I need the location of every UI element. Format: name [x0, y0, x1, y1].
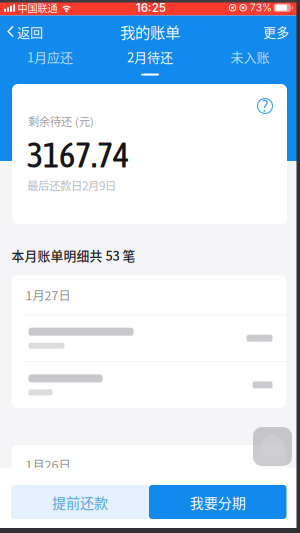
- staticText: 更多: [263, 22, 289, 41]
- staticText: 1月27日: [25, 286, 70, 304]
- staticText: 我要分期: [190, 492, 246, 512]
- staticText: 我的账单: [120, 20, 180, 43]
- staticText: 3167.74: [27, 135, 129, 175]
- staticText: 中国联通: [17, 0, 57, 15]
- button[interactable]: 1月应还: [0, 47, 100, 80]
- staticText: 返回: [17, 22, 43, 41]
- button[interactable]: 2月待还: [100, 47, 200, 80]
- staticText: 最后还款日2月9日: [27, 177, 116, 194]
- staticText: 73%: [250, 1, 272, 14]
- staticText: 2月待还: [127, 47, 173, 66]
- button[interactable]: 返回: [0, 15, 53, 47]
- button[interactable]: 我要分期: [149, 485, 286, 519]
- staticText: 1月26日: [25, 456, 70, 473]
- button[interactable]: 未入账: [200, 47, 300, 80]
- staticText: 未入账: [230, 47, 269, 66]
- button[interactable]: 帮助说明: [257, 98, 273, 114]
- button[interactable]: 提前还款: [11, 485, 149, 519]
- staticText: 1月应还: [27, 47, 73, 66]
- staticText: 本月账单明细共 53 笔: [11, 246, 135, 264]
- button[interactable]: [11, 315, 286, 361]
- button[interactable]: [11, 362, 286, 408]
- button[interactable]: 更多: [252, 15, 300, 47]
- staticText: 16:25: [136, 1, 166, 15]
- staticText: 剩余待还 (元): [28, 113, 94, 129]
- staticText: ?: [262, 97, 268, 115]
- staticText: 提前还款: [52, 492, 108, 512]
